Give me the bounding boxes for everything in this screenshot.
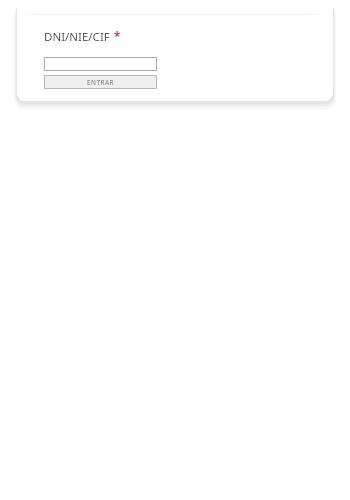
staticText: DNI/NIE/CIF bbox=[44, 29, 110, 45]
staticText: ENTRAR bbox=[87, 78, 114, 87]
button[interactable]: DNI/NIE/CIF input field bbox=[44, 57, 157, 71]
button[interactable]: ENTRAR bbox=[44, 75, 157, 89]
staticText: * bbox=[114, 29, 121, 45]
